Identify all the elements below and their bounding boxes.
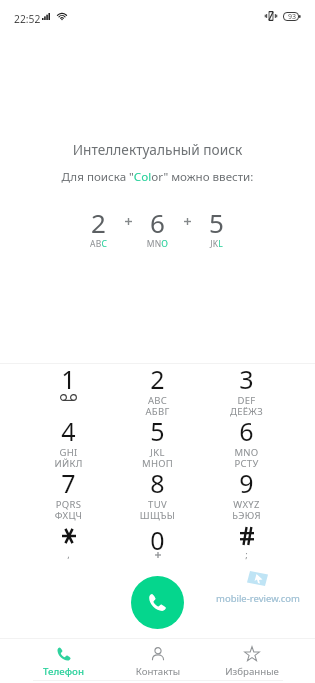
button[interactable]: Контакты <box>111 638 205 683</box>
staticText: Избранные <box>205 665 299 678</box>
button[interactable]: Star <box>24 520 113 580</box>
staticText: Для поиска "Color" можно ввести: <box>0 169 315 185</box>
staticText: 2 <box>77 205 120 240</box>
button[interactable]: 1 <box>24 364 113 416</box>
staticText: MNO <box>202 446 291 459</box>
staticText: 5 <box>113 414 202 448</box>
staticText: , <box>24 548 113 561</box>
button[interactable]: Hash <box>202 520 291 580</box>
staticText: ФХЦЧ <box>24 509 113 522</box>
staticText: 5 <box>195 205 238 240</box>
staticText: ЬЭЮЯ <box>202 509 291 522</box>
staticText: МНОП <box>113 457 202 470</box>
staticText: ДЕЁЖЗ <box>202 405 291 418</box>
staticText: 1 <box>24 362 113 396</box>
staticText: 8 <box>113 466 202 500</box>
staticText: ИЙКЛ <box>24 457 113 470</box>
staticText: JKL <box>195 238 238 250</box>
staticText: 7 <box>24 466 113 500</box>
staticText: ABC <box>113 394 202 407</box>
button[interactable]: 9 <box>202 468 291 520</box>
button[interactable]: 2 <box>113 364 202 416</box>
button[interactable]: Телефон <box>16 638 111 683</box>
other: Silent mode <box>264 11 278 21</box>
staticText: DEF <box>202 394 291 407</box>
staticText: Телефон <box>16 665 111 678</box>
staticText: WXYZ <box>202 498 291 511</box>
staticText: JKL <box>113 446 202 459</box>
button[interactable]: 3 <box>202 364 291 416</box>
button[interactable]: Call <box>131 576 184 629</box>
staticText: ; <box>202 548 291 561</box>
staticText: 22:52 <box>14 12 41 26</box>
staticText: 3 <box>202 362 291 396</box>
staticText: РСТУ <box>202 457 291 470</box>
staticText: Контакты <box>111 665 205 678</box>
button[interactable]: 4 <box>24 416 113 468</box>
staticText: Интеллектуальный поиск <box>0 140 315 159</box>
staticText: 0 <box>113 523 202 557</box>
staticText: 6 <box>136 205 179 240</box>
button[interactable]: 6 <box>202 416 291 468</box>
staticText: 2 <box>113 362 202 396</box>
staticText: АБВГ <box>113 405 202 418</box>
staticText: PQRS <box>24 498 113 511</box>
staticText: ШЩЪЫ <box>113 509 202 522</box>
button[interactable]: Избранные <box>205 638 299 683</box>
staticText: 9 <box>202 466 291 500</box>
button[interactable]: 8 <box>113 468 202 520</box>
staticText: GHI <box>24 446 113 459</box>
staticText: ABC <box>77 238 120 250</box>
button[interactable]: 0 <box>113 520 202 580</box>
staticText: 4 <box>24 414 113 448</box>
staticText: MNO <box>136 238 179 250</box>
staticText: TUV <box>113 498 202 511</box>
button[interactable]: 5 <box>113 416 202 468</box>
staticText: 6 <box>202 414 291 448</box>
staticText: 93 <box>288 12 297 21</box>
button[interactable]: 7 <box>24 468 113 520</box>
staticText: mobile-review.com <box>216 592 300 605</box>
